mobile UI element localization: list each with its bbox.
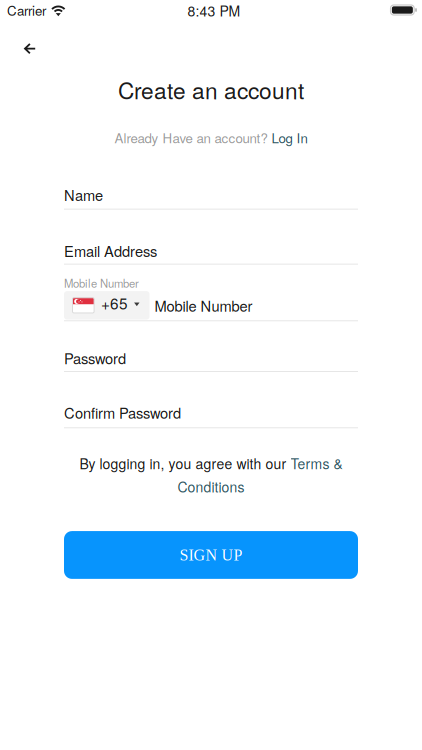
button[interactable]: Log In [271, 128, 307, 147]
staticText: Create an account [118, 73, 304, 106]
staticText: Confirm Password [64, 402, 181, 423]
button[interactable]: Terms & [290, 453, 342, 473]
staticText: 8:43 PM [187, 0, 240, 20]
staticText: Password [64, 347, 126, 368]
staticText: SIGN UP [179, 546, 242, 564]
staticText: Name [64, 184, 103, 205]
staticText: Log In [271, 128, 307, 147]
staticText: Terms & [290, 453, 342, 473]
button[interactable]: +65 [64, 291, 149, 320]
button[interactable]: Back [0, 22, 54, 65]
staticText: +65 [101, 292, 128, 314]
staticText: Mobile Number [64, 275, 139, 291]
staticText: Carrier [7, 0, 46, 20]
button[interactable]: Conditions [177, 476, 244, 496]
staticText: Mobile Number [154, 295, 252, 316]
staticText: Already Have an account? [114, 128, 267, 147]
staticText: By logging in, you agree with our [79, 453, 290, 473]
staticText: Email Address [64, 240, 157, 261]
staticText: Conditions [177, 476, 244, 496]
button[interactable]: SIGN UP [64, 531, 358, 579]
